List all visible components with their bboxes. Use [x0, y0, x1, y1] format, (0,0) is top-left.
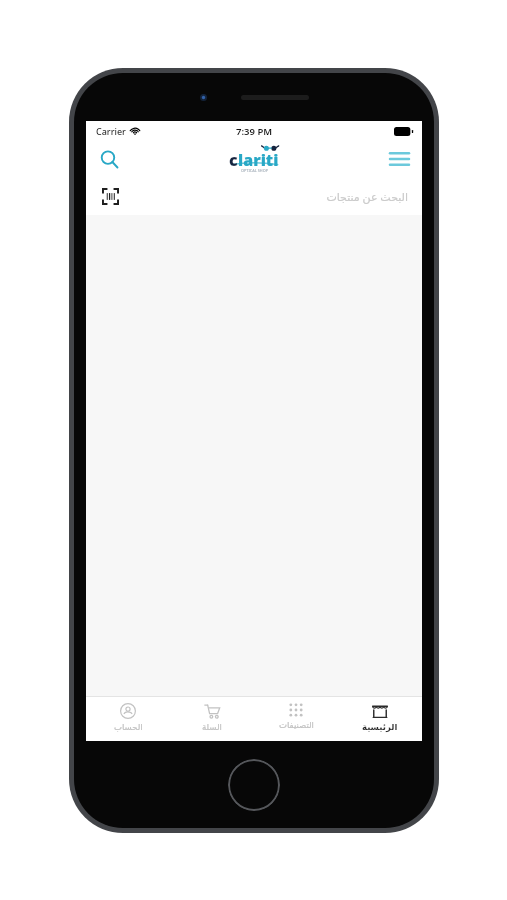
staticText: OPTICAL SHOP: [241, 168, 268, 173]
button[interactable]: الرئيسية: [338, 697, 422, 741]
staticText: الحساب: [114, 722, 143, 732]
staticText: lariti: [238, 149, 279, 171]
button[interactable]: Menu: [382, 142, 416, 176]
button[interactable]: السلة: [170, 697, 254, 741]
button[interactable]: Clariti Optical Shop logo: [223, 144, 285, 174]
staticText: Carrier: [96, 125, 126, 137]
staticText: السلة: [202, 722, 222, 732]
button[interactable]: Scan barcode: [98, 184, 122, 208]
button[interactable]: التصنيفات: [254, 697, 338, 741]
staticText: c: [229, 149, 238, 171]
button[interactable]: Home button: [228, 759, 280, 811]
staticText: الرئيسية: [362, 722, 398, 732]
button[interactable]: الحساب: [86, 697, 170, 741]
button[interactable]: Search: [92, 142, 126, 176]
staticText: التصنيفات: [279, 720, 314, 730]
staticText: 7:39 PM: [236, 125, 273, 138]
button[interactable]: Scan barcode: [86, 177, 422, 215]
staticText: البحث عن منتجات: [326, 189, 408, 204]
